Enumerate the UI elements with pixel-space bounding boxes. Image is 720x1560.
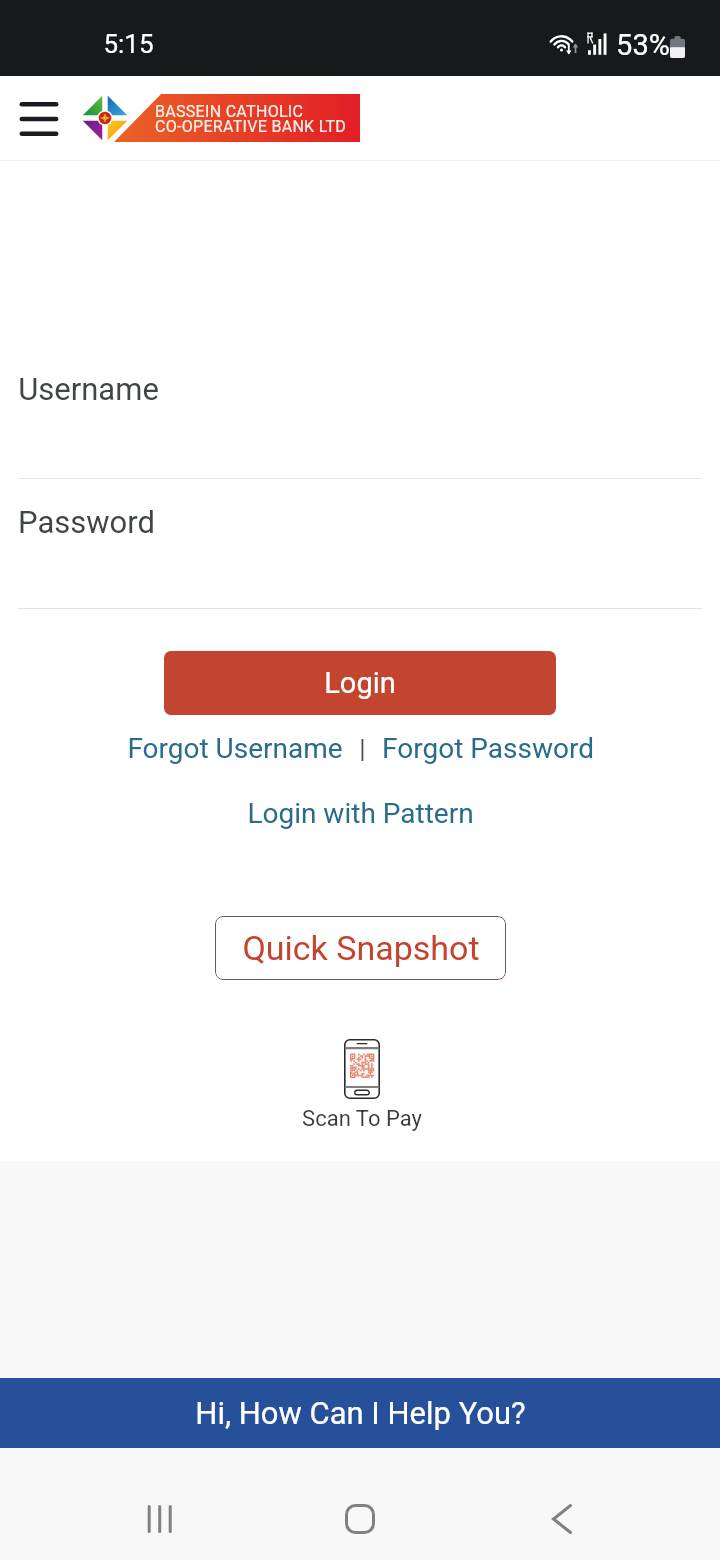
button[interactable]: Back — [523, 1485, 601, 1553]
button[interactable]: Login — [164, 651, 556, 715]
staticText: Login with Pattern — [247, 797, 474, 830]
staticText: CO-OPERATIVE BANK LTD — [155, 117, 347, 136]
staticText: Hi, How Can I Help You? — [195, 1395, 526, 1431]
staticText: BASSEIN CATHOLIC — [155, 102, 304, 121]
button[interactable]: Forgot Username — [125, 726, 345, 771]
button[interactable]: Open navigation menu — [9, 89, 69, 149]
button[interactable]: Password — [0, 479, 720, 609]
button[interactable]: Username — [0, 340, 720, 479]
button[interactable]: Home — [321, 1485, 399, 1553]
staticText: Quick Snapshot — [242, 928, 480, 968]
staticText: 5:15 — [103, 29, 154, 59]
button[interactable]: Scan To Pay — [2, 1039, 720, 1132]
staticText: Login — [324, 666, 396, 700]
staticText: Password — [18, 504, 155, 540]
button[interactable]: Login with Pattern — [239, 791, 482, 836]
staticText: Username — [18, 371, 159, 407]
staticText: Scan To Pay — [302, 1106, 422, 1132]
staticText: Forgot Password — [382, 732, 594, 765]
button[interactable]: Forgot Password — [380, 726, 596, 771]
staticText: 53% — [616, 28, 670, 62]
button[interactable]: Recent apps — [121, 1485, 199, 1553]
button[interactable]: Hi, How Can I Help You? — [0, 1378, 720, 1448]
button[interactable]: Quick Snapshot — [215, 916, 506, 980]
staticText: | — [359, 734, 366, 764]
staticText: Forgot Username — [127, 732, 343, 765]
